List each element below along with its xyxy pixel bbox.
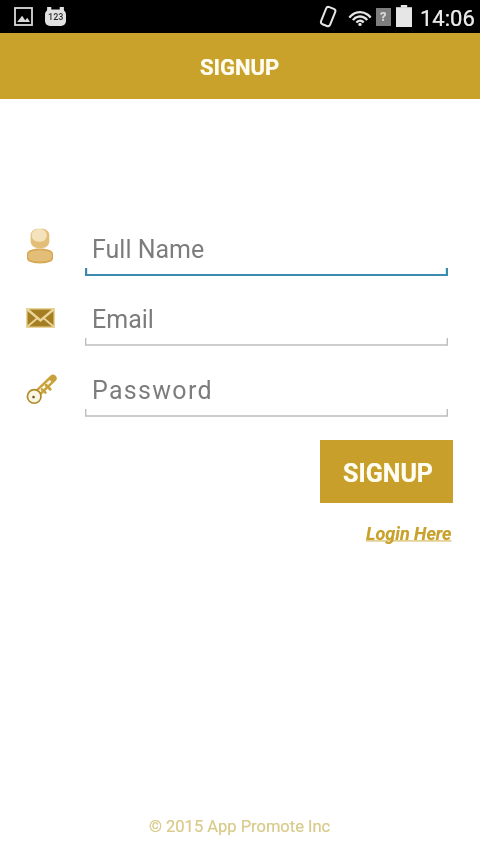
button[interactable]: Password xyxy=(85,368,448,417)
button[interactable]: Email xyxy=(85,297,448,346)
staticText: Full Name xyxy=(92,235,205,264)
staticText: Password xyxy=(92,376,213,405)
staticText: © 2015 App Promote Inc xyxy=(149,817,331,836)
staticText: Login Here xyxy=(366,523,452,544)
other: Email xyxy=(26,308,55,328)
staticText: Email xyxy=(92,305,154,334)
staticText: SIGNUP xyxy=(200,55,280,81)
button[interactable]: SIGNUP xyxy=(320,440,453,503)
staticText: 14:06 xyxy=(420,6,475,32)
button[interactable]: Full Name xyxy=(85,227,448,276)
staticText: SIGNUP xyxy=(343,459,433,488)
button[interactable]: Login Here xyxy=(364,521,454,546)
other: Name xyxy=(27,228,53,265)
staticText: 123 xyxy=(48,12,64,23)
staticText: ? xyxy=(380,9,387,24)
other: Password xyxy=(23,374,57,408)
